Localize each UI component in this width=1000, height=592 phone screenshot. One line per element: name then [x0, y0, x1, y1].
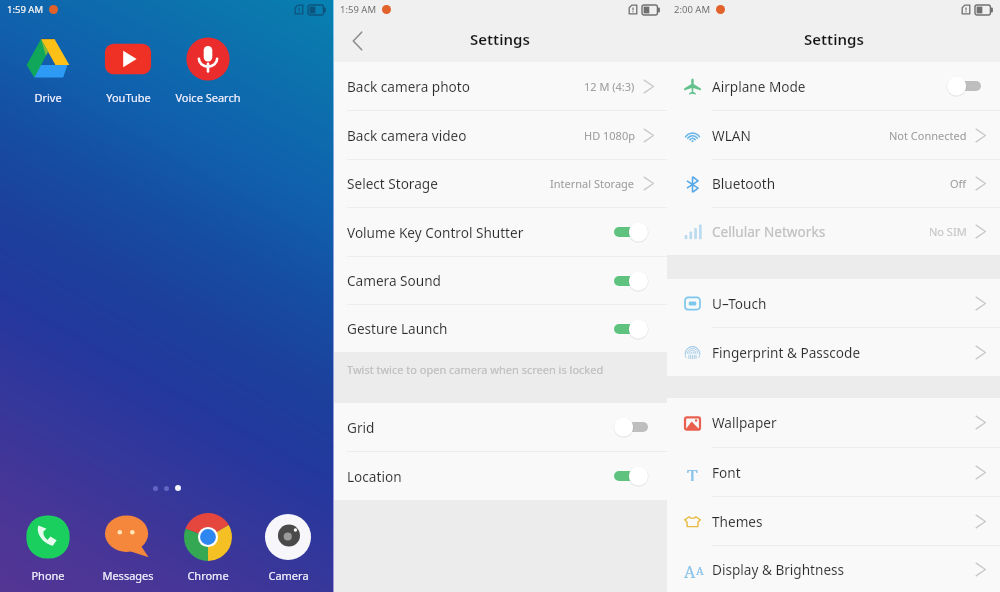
staticText: U–Touch	[712, 294, 767, 313]
staticText: Phone	[31, 568, 65, 583]
staticText: Messages	[102, 568, 154, 583]
button[interactable]: On	[614, 466, 648, 486]
button[interactable]: Cellular Networks	[667, 208, 1000, 255]
button[interactable]: Bluetooth	[667, 160, 1000, 207]
button[interactable]: Off	[614, 417, 648, 437]
staticText: No SIM	[929, 224, 967, 239]
button[interactable]: Location	[333, 452, 667, 500]
staticText: T	[687, 464, 698, 481]
staticText: Twist twice to open camera when screen i…	[347, 362, 604, 377]
staticText: Drive	[34, 90, 62, 105]
staticText: Camera	[268, 568, 309, 583]
button[interactable]: Chrome	[168, 513, 248, 583]
button[interactable]: T	[667, 448, 1000, 496]
staticText: 12 M (4:3)	[584, 79, 635, 94]
button[interactable]: Messages	[88, 513, 168, 583]
button[interactable]: Camera	[248, 513, 328, 583]
staticText: HD 1080p	[584, 128, 635, 143]
staticText: Voice Search	[175, 90, 241, 105]
staticText: 1:59 AM	[7, 3, 44, 16]
button[interactable]: Airplane Mode	[667, 62, 1000, 110]
button[interactable]: Gesture Launch	[333, 305, 667, 352]
staticText: Not Connected	[889, 128, 967, 143]
button[interactable]: Themes	[667, 497, 1000, 545]
button[interactable]: Back	[333, 19, 381, 62]
button[interactable]: Select Storage	[333, 160, 667, 207]
staticText: Select Storage	[347, 174, 438, 193]
staticText: Settings	[804, 29, 864, 49]
staticText: Settings	[470, 29, 530, 49]
staticText: Back camera video	[347, 126, 467, 145]
button[interactable]: U–Touch	[667, 279, 1000, 327]
staticText: Camera Sound	[347, 271, 441, 290]
button[interactable]: Drive	[8, 35, 88, 105]
staticText: Volume Key Control Shutter	[347, 223, 524, 242]
staticText: Chrome	[187, 568, 229, 583]
staticText: Fingerprint & Passcode	[712, 343, 861, 362]
button[interactable]: On	[614, 222, 648, 242]
button[interactable]: Back camera photo	[333, 62, 667, 110]
button[interactable]: Off	[947, 76, 981, 96]
staticText: 1:59 AM	[340, 3, 377, 16]
staticText: Internal Storage	[550, 176, 635, 191]
staticText: WLAN	[712, 126, 751, 145]
button[interactable]: YouTube	[88, 35, 168, 105]
staticText: Off	[950, 176, 967, 191]
button[interactable]: On	[614, 271, 648, 291]
button[interactable]: WLAN	[667, 111, 1000, 159]
staticText: A	[696, 563, 701, 578]
staticText: A	[684, 561, 696, 578]
button[interactable]: Back camera video	[333, 111, 667, 159]
staticText: Cellular Networks	[712, 222, 826, 241]
button[interactable]: Volume Key Control Shutter	[333, 208, 667, 256]
button[interactable]: Fingerprint & Passcode	[667, 328, 1000, 376]
staticText: Location	[347, 467, 402, 486]
button[interactable]: Grid	[333, 403, 667, 451]
button[interactable]: Wallpaper	[667, 398, 1000, 447]
button[interactable]: Phone	[8, 513, 88, 583]
button[interactable]: On	[614, 319, 648, 339]
staticText: YouTube	[106, 90, 151, 105]
staticText: Wallpaper	[712, 413, 777, 432]
staticText: Bluetooth	[712, 174, 776, 193]
staticText: Themes	[712, 512, 763, 531]
button[interactable]: Voice Search	[168, 35, 248, 105]
button[interactable]: A	[667, 546, 1000, 592]
staticText: Airplane Mode	[712, 77, 806, 96]
staticText: Gesture Launch	[347, 319, 448, 338]
staticText: Grid	[347, 418, 375, 437]
staticText: Display & Brightness	[712, 560, 845, 579]
button[interactable]: Camera Sound	[333, 257, 667, 304]
staticText: Back camera photo	[347, 77, 470, 96]
staticText: 2:00 AM	[674, 3, 711, 16]
staticText: Font	[712, 463, 741, 482]
